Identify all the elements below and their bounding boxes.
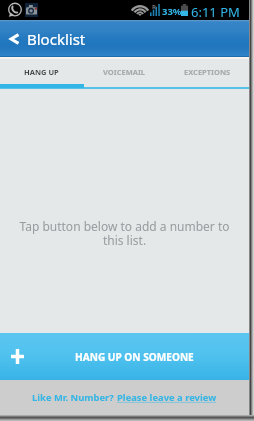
staticText: 6:11 PM	[191, 3, 240, 21]
button[interactable]: EXCEPTIONS	[166, 59, 249, 84]
staticText: EXCEPTIONS	[184, 67, 231, 77]
button[interactable]: Like Mr. Number?	[0, 380, 249, 415]
staticText: Please leave a review	[117, 391, 217, 404]
other: Back	[9, 33, 19, 45]
staticText: Tap button below to add a number to this…	[0, 218, 249, 249]
staticText: 33%	[162, 5, 182, 18]
staticText: HANG UP ON SOMEONE	[75, 350, 194, 364]
button[interactable]: HANG UP	[0, 59, 83, 84]
button[interactable]: HANG UP ON SOMEONE	[0, 333, 249, 380]
button[interactable]: Back	[0, 20, 249, 57]
staticText: Like Mr. Number?	[32, 391, 117, 404]
button[interactable]: VOICEMAIL	[83, 59, 166, 84]
staticText: HANG UP	[24, 67, 59, 77]
staticText: R	[152, 3, 156, 11]
staticText: VOICEMAIL	[103, 67, 146, 77]
staticText: Blocklist	[27, 29, 86, 49]
